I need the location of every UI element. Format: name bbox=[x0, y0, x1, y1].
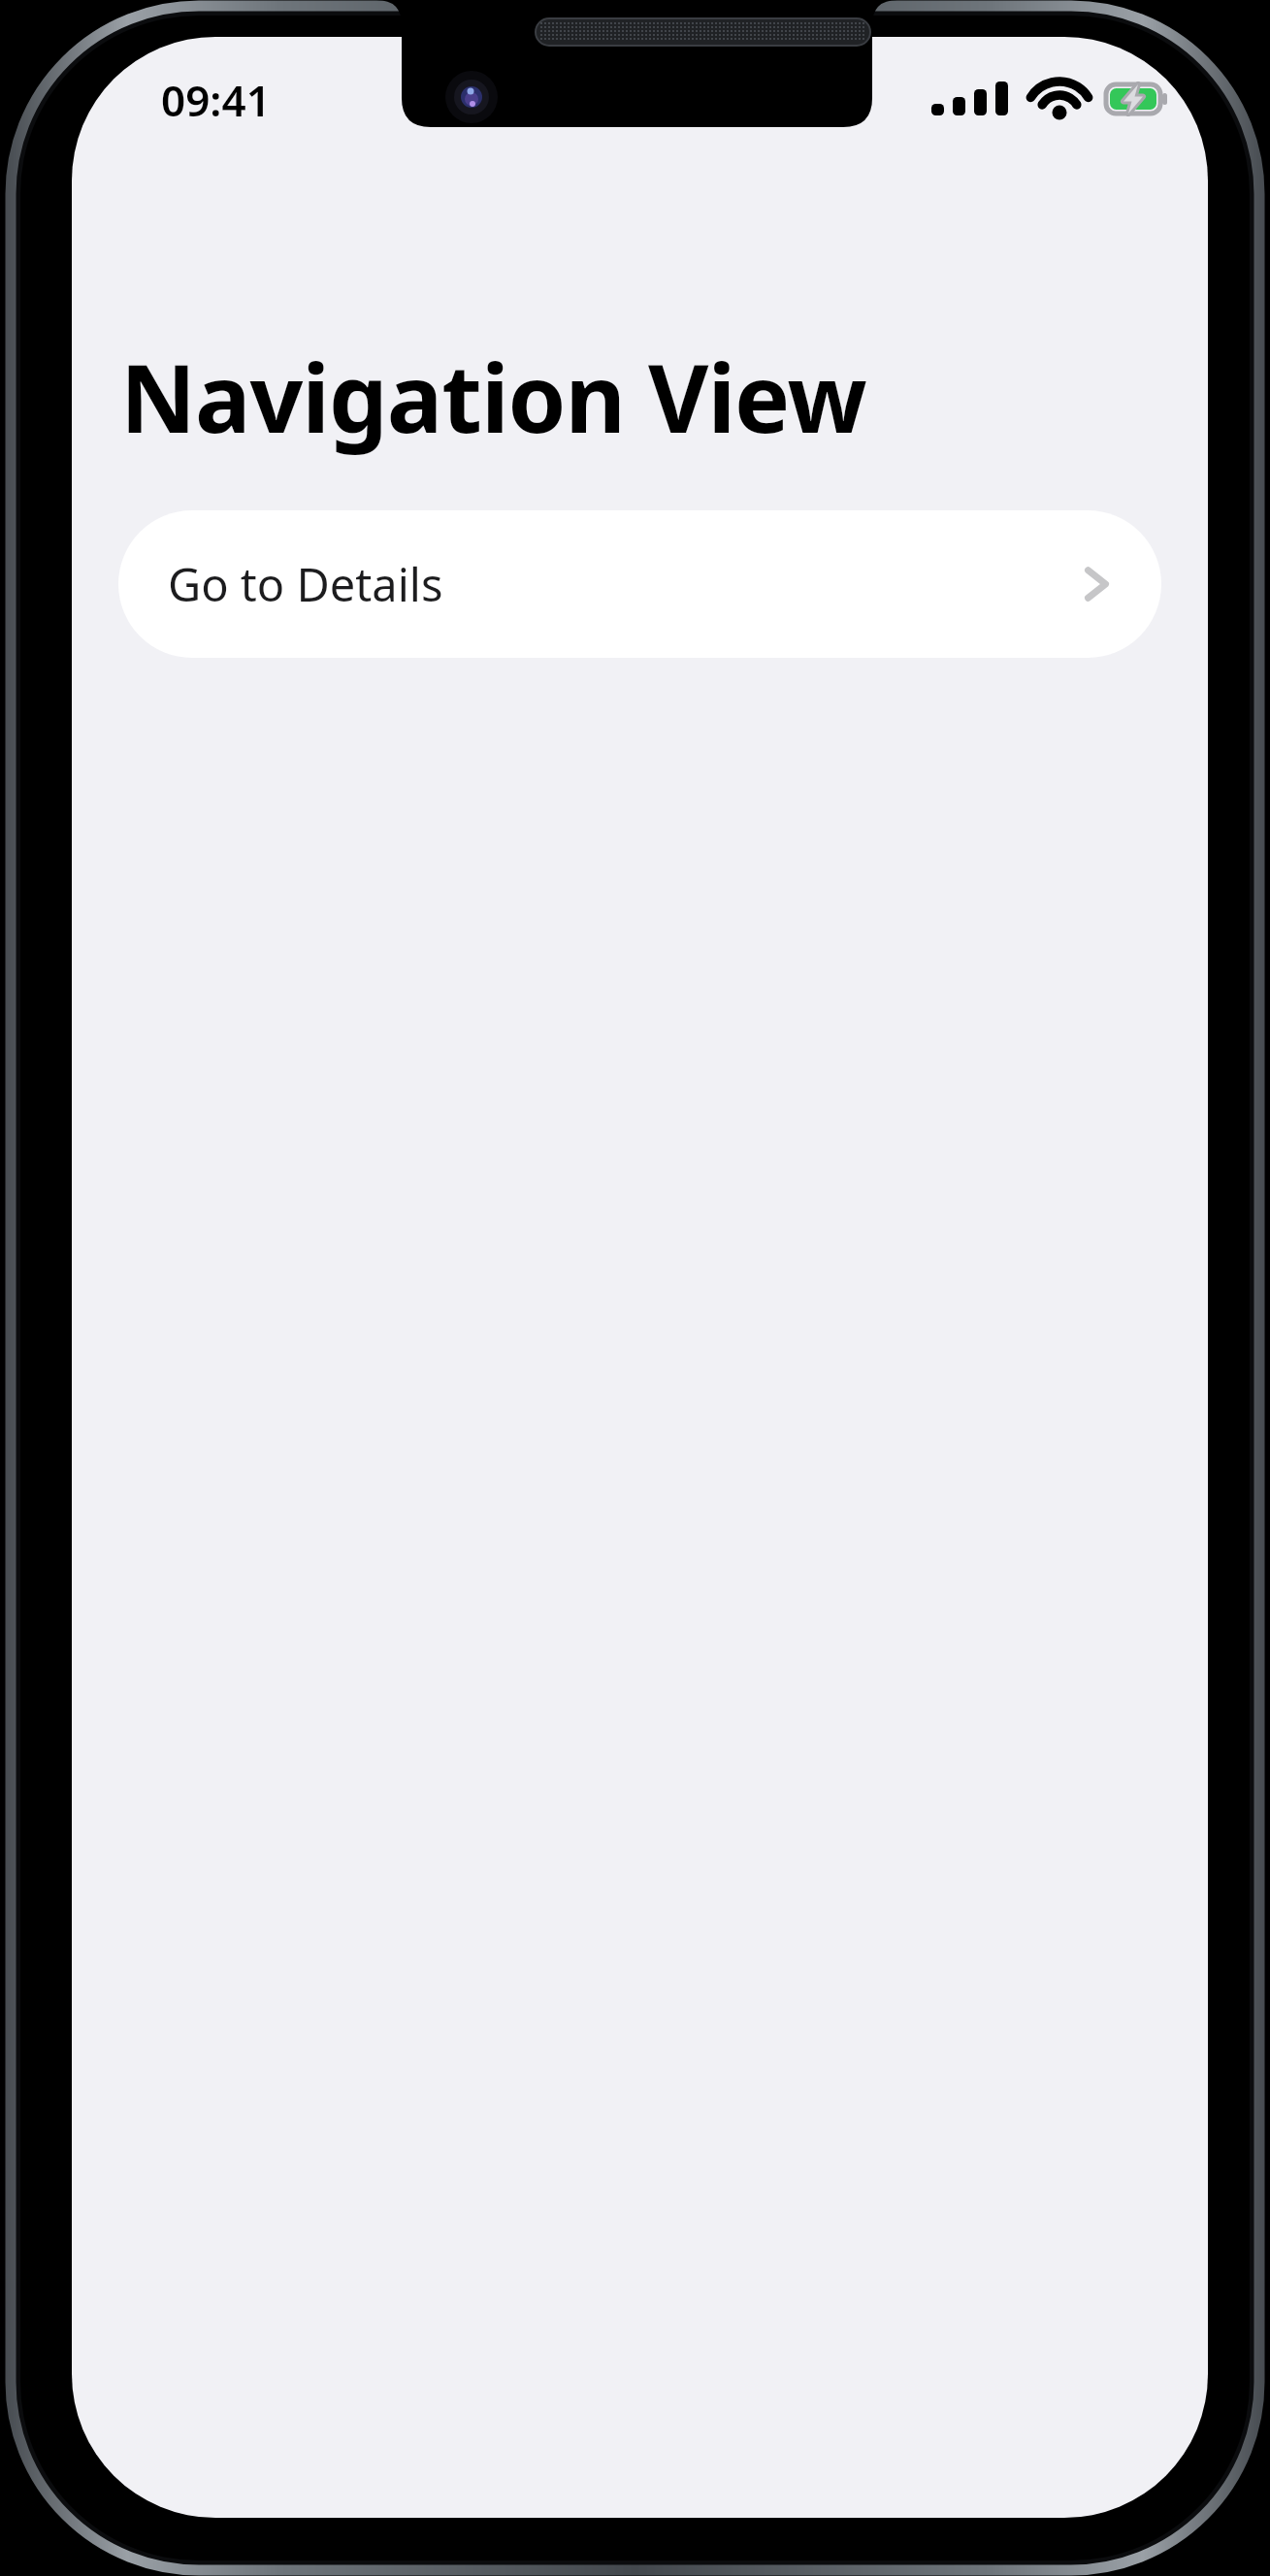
button[interactable]: Go to Details bbox=[118, 510, 1161, 658]
staticText: 09:41 bbox=[161, 71, 271, 129]
staticText: Go to Details bbox=[168, 553, 443, 615]
staticText: Navigation View bbox=[120, 333, 866, 460]
